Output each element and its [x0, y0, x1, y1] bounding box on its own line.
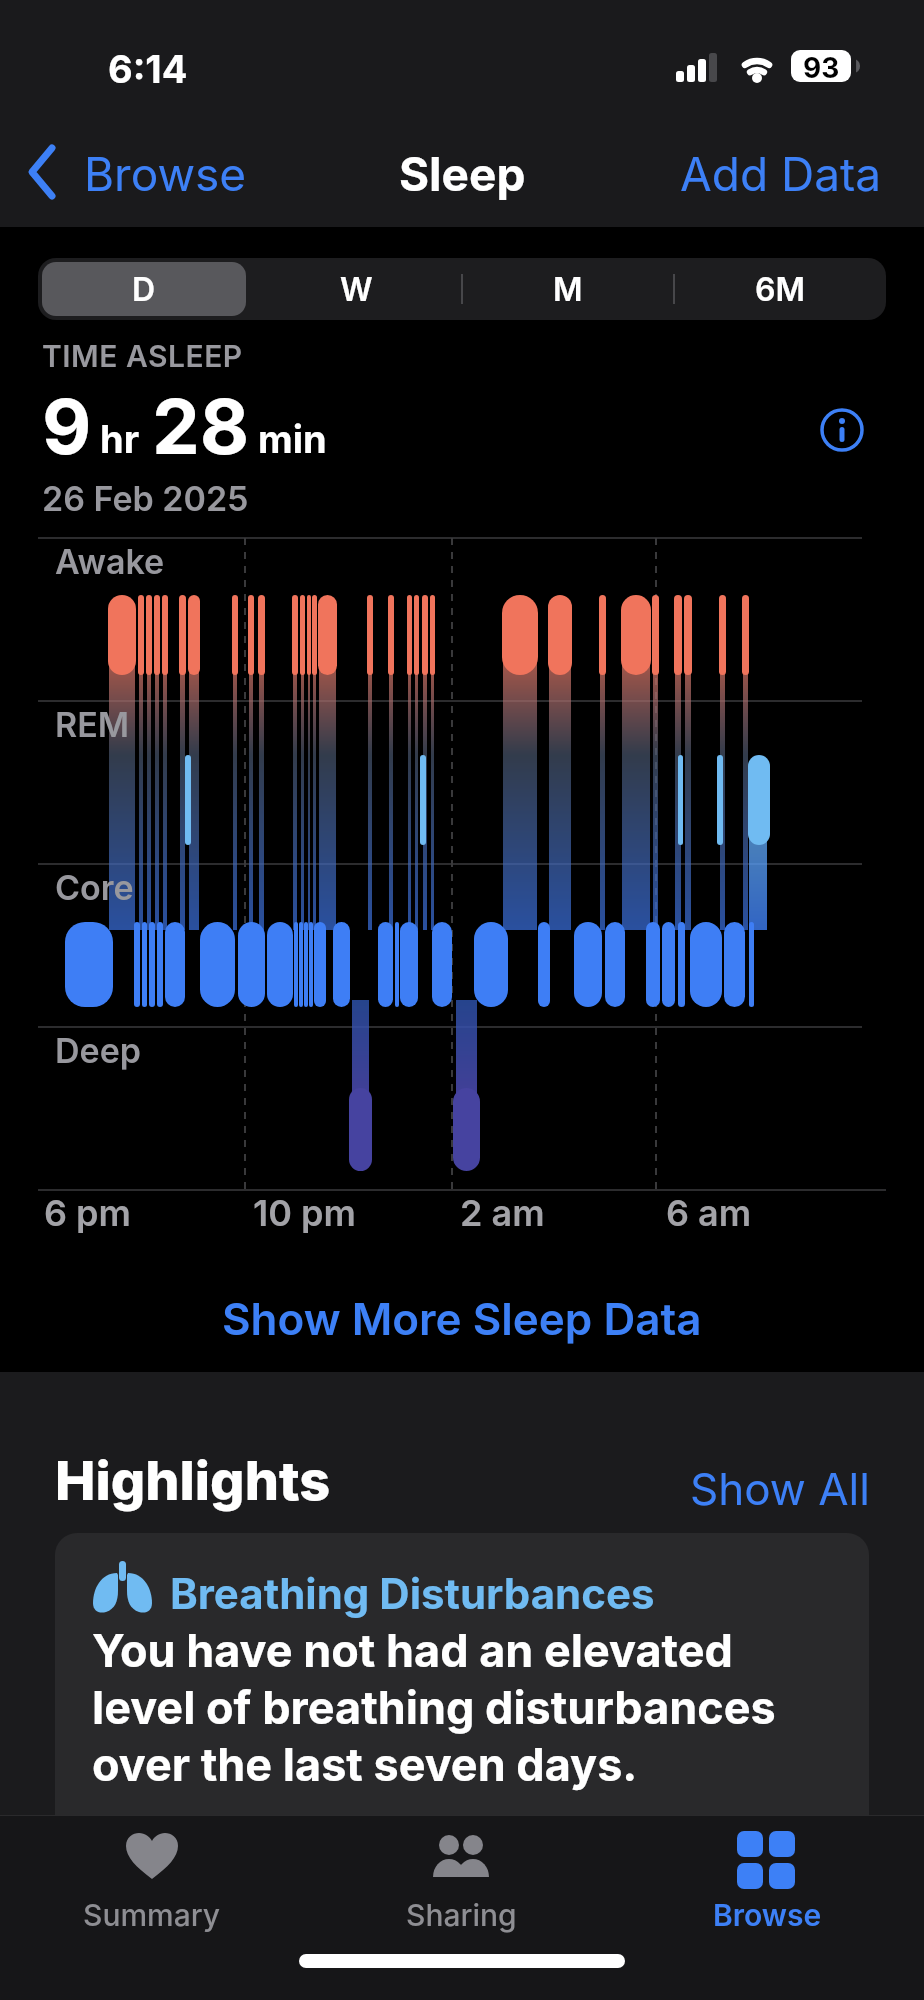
staticText: 6M [755, 270, 805, 309]
staticText: Browse [84, 146, 247, 202]
button[interactable]: Summary [62, 1825, 242, 1945]
staticText: Breathing Disturbances [170, 1568, 655, 1619]
staticText: Show All [690, 1462, 870, 1515]
staticText: Summary [83, 1897, 221, 1933]
staticText: Browse [713, 1897, 822, 1933]
button[interactable]: Breathing Disturbances [55, 1533, 869, 1953]
staticText: 6 am [666, 1191, 752, 1235]
staticText: 26 Feb 2025 [42, 478, 249, 519]
button[interactable]: Add Data [680, 146, 882, 202]
button[interactable] [820, 408, 864, 452]
staticText: D [132, 270, 156, 309]
staticText: W [340, 270, 373, 309]
staticText: Highlights [55, 1448, 331, 1513]
button[interactable]: Browse [24, 138, 187, 194]
staticText: Sharing [406, 1897, 517, 1933]
staticText: Core [55, 867, 134, 908]
button[interactable]: Show All [690, 1462, 870, 1515]
staticText: 28 [152, 380, 250, 472]
button[interactable]: W [250, 258, 462, 320]
staticText: 6 pm [44, 1191, 131, 1235]
staticText: M [553, 270, 583, 309]
staticText: 6:14 [108, 46, 188, 92]
staticText: You have not had an elevated level of br… [92, 1623, 776, 1791]
staticText: Deep [55, 1030, 141, 1071]
button[interactable]: M [462, 258, 674, 320]
button[interactable] [42, 262, 246, 316]
staticText: min [258, 416, 327, 462]
staticText: 9 [42, 380, 92, 472]
staticText: Sleep [399, 146, 526, 202]
button[interactable]: Show More Sleep Data [222, 1292, 702, 1345]
staticText: Show More Sleep Data [222, 1292, 702, 1345]
staticText: hr [100, 416, 140, 462]
staticText: TIME ASLEEP [42, 338, 243, 374]
button[interactable]: Browse [677, 1825, 857, 1945]
button[interactable]: Sharing [371, 1825, 551, 1945]
staticText: 93 [803, 51, 840, 85]
staticText: 10 pm [253, 1191, 356, 1235]
staticText: REM [55, 704, 130, 745]
button[interactable]: 6M [674, 258, 886, 320]
staticText: 2 am [460, 1191, 545, 1235]
button[interactable]: D [38, 258, 250, 320]
staticText: Add Data [680, 146, 882, 202]
staticText: Awake [55, 541, 165, 582]
